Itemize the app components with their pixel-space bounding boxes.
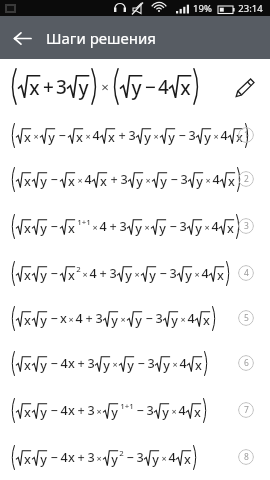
staticText: × bbox=[172, 358, 178, 370]
staticText: 4 bbox=[158, 74, 169, 100]
staticText: x bbox=[228, 173, 235, 190]
staticText: 5 bbox=[244, 312, 249, 324]
staticText: − bbox=[145, 310, 153, 327]
staticText: 4 bbox=[60, 402, 68, 419]
staticText: − bbox=[50, 355, 58, 372]
staticText: + bbox=[118, 127, 126, 144]
staticText: x bbox=[24, 267, 31, 284]
staticText: × bbox=[92, 221, 98, 233]
staticText: y bbox=[103, 357, 110, 374]
staticText: Шаги решения bbox=[46, 28, 156, 48]
staticText: y bbox=[168, 129, 175, 146]
staticText: + bbox=[77, 355, 85, 372]
staticText: x bbox=[194, 404, 201, 421]
staticText: x bbox=[68, 449, 75, 466]
button[interactable]: x bbox=[0, 340, 270, 386]
staticText: 3 bbox=[87, 402, 95, 419]
staticText: y bbox=[163, 357, 170, 374]
staticText: × bbox=[82, 268, 88, 280]
staticText: x bbox=[76, 129, 83, 146]
staticText: y bbox=[136, 173, 143, 190]
staticText: x bbox=[236, 129, 243, 146]
staticText: y bbox=[40, 173, 47, 190]
staticText: y bbox=[152, 451, 159, 468]
staticText: × bbox=[96, 405, 102, 417]
button[interactable]: x bbox=[0, 156, 270, 202]
staticText: x bbox=[68, 173, 75, 190]
staticText: y bbox=[135, 220, 142, 237]
staticText: + bbox=[109, 218, 117, 235]
staticText: 4 bbox=[187, 310, 195, 327]
staticText: 4 bbox=[212, 171, 220, 188]
staticText: − bbox=[50, 171, 58, 188]
staticText: y bbox=[111, 404, 118, 421]
staticText: × bbox=[112, 358, 118, 370]
staticText: y bbox=[159, 220, 166, 237]
staticText: × bbox=[145, 174, 151, 186]
staticText: y bbox=[48, 129, 55, 146]
staticText: y bbox=[40, 451, 47, 468]
staticText: y bbox=[135, 312, 142, 329]
staticText: × bbox=[153, 130, 159, 142]
staticText: 7 bbox=[244, 404, 249, 416]
staticText: y bbox=[144, 129, 151, 146]
staticText: x bbox=[195, 357, 202, 374]
staticText: 3 bbox=[95, 310, 103, 327]
staticText: 2 bbox=[244, 173, 249, 185]
button[interactable]: x bbox=[0, 434, 270, 480]
staticText: 2 bbox=[119, 448, 124, 459]
staticText: x bbox=[60, 310, 67, 327]
button[interactable]: x bbox=[0, 296, 270, 340]
staticText: × bbox=[77, 174, 83, 186]
staticText: × bbox=[101, 78, 109, 96]
button[interactable]: x bbox=[0, 250, 270, 296]
staticText: y bbox=[78, 75, 89, 101]
button[interactable]: Edit expression bbox=[230, 72, 260, 102]
staticText: y bbox=[185, 267, 192, 284]
staticText: 4 bbox=[179, 355, 187, 372]
staticText: 4 bbox=[92, 127, 100, 144]
staticText: x bbox=[24, 129, 31, 146]
staticText: 3 bbox=[87, 355, 95, 372]
staticText: × bbox=[96, 452, 102, 464]
staticText: 4 bbox=[201, 265, 209, 282]
button[interactable]: Back bbox=[6, 22, 38, 54]
staticText: − bbox=[58, 127, 66, 144]
staticText: − bbox=[50, 218, 58, 235]
staticText: x bbox=[68, 355, 75, 372]
staticText: − bbox=[159, 265, 167, 282]
staticText: 3 bbox=[119, 218, 127, 235]
button[interactable]: x bbox=[0, 114, 270, 156]
staticText: y bbox=[111, 312, 118, 329]
staticText: 3 bbox=[87, 449, 95, 466]
staticText: x bbox=[203, 312, 210, 329]
staticText: x bbox=[24, 220, 31, 237]
staticText: 3 bbox=[136, 449, 144, 466]
staticText: − bbox=[50, 265, 58, 282]
staticText: 4 bbox=[99, 218, 107, 235]
staticText: 3 bbox=[244, 220, 249, 232]
staticText: × bbox=[33, 130, 39, 142]
staticText: − bbox=[50, 402, 58, 419]
staticText: x bbox=[227, 220, 234, 237]
staticText: y bbox=[160, 173, 167, 190]
staticText: y bbox=[40, 357, 47, 374]
staticText: 3 bbox=[109, 265, 117, 282]
staticText: x bbox=[24, 173, 31, 190]
staticText: 2 bbox=[76, 264, 81, 275]
staticText: × bbox=[171, 405, 177, 417]
button[interactable]: x bbox=[0, 386, 270, 434]
staticText: − bbox=[170, 171, 178, 188]
staticText: y bbox=[40, 267, 47, 284]
staticText: × bbox=[204, 221, 210, 233]
button[interactable]: x bbox=[0, 202, 270, 250]
staticText: x bbox=[68, 267, 75, 284]
staticText: 3 bbox=[120, 171, 128, 188]
staticText: 4 bbox=[89, 265, 97, 282]
staticText: 4 bbox=[84, 171, 92, 188]
staticText: y bbox=[40, 312, 47, 329]
staticText: × bbox=[144, 221, 150, 233]
staticText: − bbox=[169, 218, 177, 235]
staticText: − bbox=[137, 355, 145, 372]
staticText: 4 bbox=[211, 218, 219, 235]
